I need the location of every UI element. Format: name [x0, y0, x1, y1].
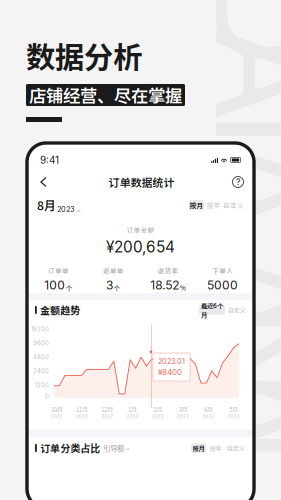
staticText: 9600	[33, 339, 49, 347]
staticText: 店铺经营、尽在掌握	[29, 82, 182, 108]
button[interactable]: 按月	[191, 443, 206, 453]
staticText: 19200	[31, 325, 49, 333]
staticText: 3月	[178, 405, 187, 414]
staticText: 2023	[227, 414, 239, 419]
staticText: 金额趋势	[40, 303, 80, 317]
staticText: 2022	[76, 414, 88, 419]
staticText: 18.52	[150, 278, 179, 292]
staticText: 按月	[192, 443, 204, 453]
staticText: 个	[66, 283, 73, 292]
button[interactable]: 自定义	[227, 305, 246, 315]
staticText: 2023	[202, 414, 214, 419]
staticText: T	[221, 46, 281, 213]
staticText: 10月	[51, 405, 63, 414]
staticText: 2400	[33, 367, 49, 375]
button[interactable]: 最近6个月	[199, 305, 225, 315]
staticText: 2023	[177, 414, 189, 419]
staticText: ⌄	[125, 444, 130, 452]
staticText: 8月	[37, 196, 56, 214]
staticText: %	[180, 283, 186, 292]
staticText: 2022	[101, 414, 113, 419]
staticText: 5月	[229, 405, 238, 414]
staticText: 100	[44, 278, 65, 292]
staticText: N	[214, 270, 281, 437]
button[interactable]: 自定义	[225, 443, 246, 453]
staticText: 按年	[206, 200, 220, 210]
button[interactable]: Help	[232, 176, 244, 188]
staticText: Y	[219, 438, 281, 500]
staticText: 订单分类占比	[40, 441, 100, 455]
staticText: A	[218, 102, 281, 269]
staticText: A	[218, 214, 281, 381]
staticText: 2022	[51, 414, 63, 419]
staticText: ¥8400	[158, 367, 182, 377]
staticText: 数据分析	[26, 34, 142, 76]
staticText: 订单量	[48, 266, 69, 275]
staticText: D	[216, 0, 281, 101]
staticText: 1月	[128, 405, 137, 414]
staticText: S	[221, 494, 281, 500]
staticText: 5000	[207, 278, 238, 292]
staticText: 2月	[153, 405, 162, 414]
staticText: A	[218, 326, 281, 493]
staticText: 个	[113, 283, 120, 292]
staticText: 9:41	[40, 154, 59, 166]
staticText: 2023	[126, 414, 138, 419]
staticText: 11月	[76, 405, 88, 414]
staticText: 1200	[35, 381, 49, 389]
staticText: 按年	[209, 443, 221, 453]
staticText: 2023	[57, 205, 75, 214]
staticText: 引导额	[103, 443, 124, 453]
button[interactable]: Back	[37, 175, 51, 189]
staticText: L	[227, 382, 281, 500]
staticText: 自定义	[226, 443, 244, 453]
staticText: 退单量	[103, 266, 124, 275]
staticText: A	[218, 0, 281, 157]
staticText: 下单人	[212, 266, 233, 275]
staticText: 按月	[189, 200, 203, 210]
button[interactable]: 引导额	[100, 443, 130, 453]
staticText: 12月	[101, 405, 113, 414]
button[interactable]: 自定义	[223, 200, 244, 210]
staticText: ?	[236, 177, 240, 187]
staticText: 订单数据统计	[108, 174, 174, 190]
button[interactable]: 按年	[208, 443, 223, 453]
staticText: 2023.01	[158, 357, 185, 366]
staticText: 3	[106, 278, 113, 292]
button[interactable]: 按年	[206, 200, 221, 210]
staticText: ⌄	[76, 206, 81, 214]
button[interactable]: 8月	[37, 196, 81, 214]
staticText: 0	[45, 392, 49, 400]
staticText: 4月	[204, 405, 213, 414]
staticText: 退货率	[157, 266, 178, 275]
staticText: 2023	[152, 414, 164, 419]
staticText: 4800	[33, 353, 49, 361]
staticText: 最近6个月	[201, 301, 223, 319]
staticText: 订单金额	[126, 225, 154, 235]
staticText	[246, 158, 281, 325]
staticText: 自定义	[223, 200, 244, 210]
button[interactable]: 按月	[189, 200, 204, 210]
staticText: ¥200,654	[106, 238, 175, 256]
staticText: 自定义	[227, 305, 245, 315]
